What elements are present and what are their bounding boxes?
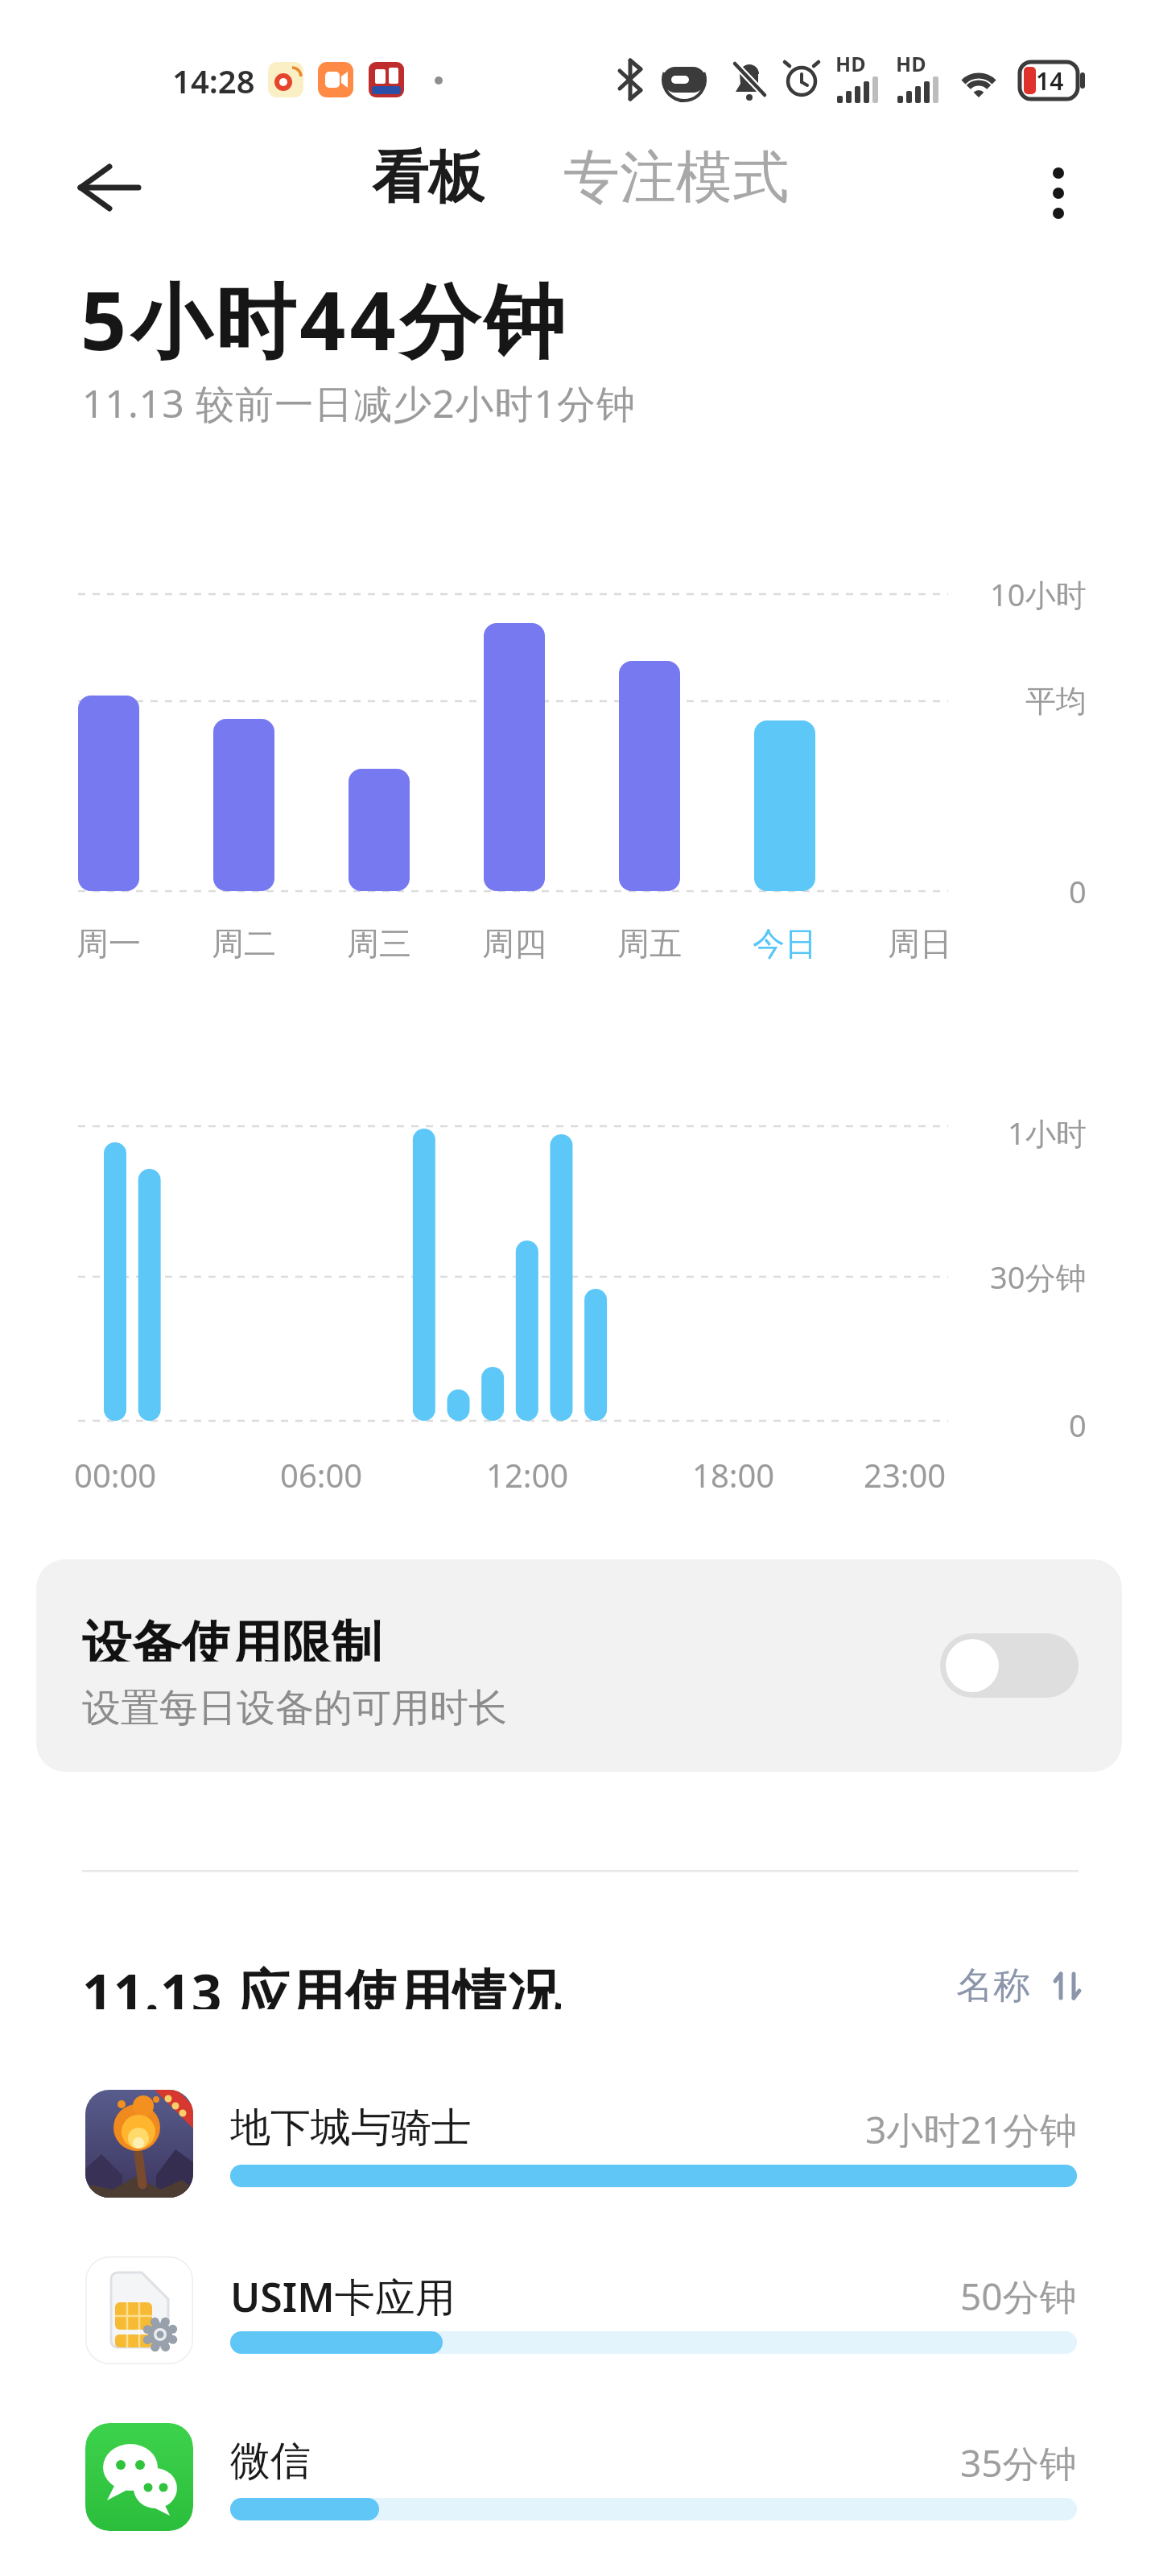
button[interactable]	[72, 2240, 1095, 2385]
staticText: 设置每日设备的可用时长	[82, 1684, 507, 1729]
button[interactable]	[36, 1559, 1122, 1772]
staticText: 5小时44分钟	[80, 264, 569, 361]
staticText: 周五	[617, 923, 682, 964]
staticText: 12:00	[486, 1453, 569, 1496]
staticText: 周一	[76, 923, 141, 964]
staticText: 地下城与骑士	[230, 2103, 472, 2149]
staticText: 00:00	[74, 1453, 157, 1496]
button[interactable]: 名称	[885, 1963, 1030, 2006]
staticText: 11.13 应用使用情况	[82, 1956, 561, 2009]
staticText: 10小时	[990, 573, 1087, 615]
staticText: 50分钟	[960, 2271, 1077, 2314]
staticText: 微信	[230, 2436, 311, 2483]
staticText: HD	[835, 50, 866, 74]
staticText: 14:28	[172, 59, 255, 102]
staticText: 0	[1069, 870, 1087, 912]
staticText: 周四	[482, 923, 547, 964]
button[interactable]	[64, 157, 153, 221]
staticText: 看板	[372, 142, 485, 212]
staticText: 今日	[753, 923, 817, 964]
staticText: 周三	[347, 923, 411, 964]
staticText: 18:00	[692, 1453, 775, 1496]
staticText: 14	[1036, 64, 1064, 97]
staticText: 周日	[888, 923, 952, 964]
staticText: 1小时	[1008, 1112, 1087, 1154]
staticText: 专注模式	[563, 142, 789, 212]
button[interactable]: 专注模式	[563, 142, 805, 212]
staticText: USIM卡应用	[230, 2269, 456, 2316]
staticText: 3小时21分钟	[865, 2104, 1077, 2148]
staticText: 30分钟	[990, 1256, 1087, 1298]
button[interactable]	[1030, 157, 1095, 229]
button[interactable]	[72, 2407, 1095, 2552]
staticText: 06:00	[280, 1453, 363, 1496]
button[interactable]: 看板	[352, 142, 505, 212]
staticText: 平均	[1025, 682, 1087, 720]
staticText: 周二	[212, 923, 276, 964]
button[interactable]	[940, 1633, 1079, 1698]
staticText: 0	[1069, 1404, 1087, 1446]
staticText: 23:00	[864, 1453, 947, 1496]
button[interactable]	[72, 2074, 1095, 2219]
staticText: 11.13 较前一日减少2小时1分钟	[82, 377, 637, 425]
staticText: 35分钟	[960, 2438, 1077, 2481]
staticText: HD	[896, 50, 926, 74]
staticText: 名称	[956, 1963, 1030, 2006]
staticText: 设备使用限制	[82, 1613, 382, 1662]
